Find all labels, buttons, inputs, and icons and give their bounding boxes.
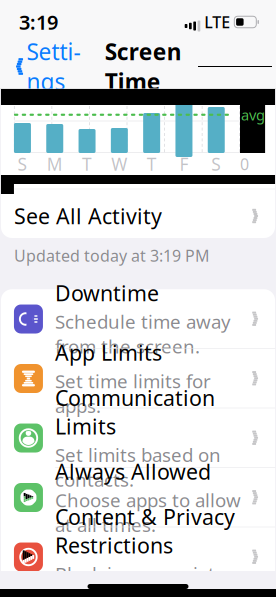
staticText: F [179, 152, 188, 175]
staticText: See All Activity [14, 202, 162, 230]
button[interactable]: Content & Privacy Restrictions [1, 527, 275, 587]
staticText: S [17, 152, 27, 175]
staticText: T [147, 152, 157, 175]
staticText: App Limits [55, 338, 162, 367]
staticText: Settings [26, 36, 80, 97]
staticText: Downtime [55, 279, 159, 307]
staticText: T [82, 152, 92, 175]
staticText: Content & Privacy Restrictions [55, 503, 235, 559]
staticText: Screen Time [105, 36, 182, 97]
staticText: Block inappropriate content. [55, 561, 226, 597]
staticText: W [111, 152, 127, 175]
button[interactable]: Downtime [1, 289, 275, 349]
button[interactable]: App Limits [1, 349, 275, 408]
staticText: Updated today at 3:19 PM [14, 245, 210, 266]
button[interactable]: See All Activity [1, 194, 275, 238]
staticText: S [211, 152, 221, 175]
staticText: M [47, 152, 63, 175]
staticText: Schedule time away from the screen. [55, 309, 231, 359]
staticText: Always Allowed [55, 457, 211, 486]
staticText: Communication Limits [55, 384, 215, 440]
staticText: Set time limits for apps. [55, 369, 211, 418]
button[interactable]: Communication Limits [1, 408, 275, 468]
staticText: avg [241, 105, 265, 124]
staticText: 0 [240, 153, 249, 175]
button[interactable]: Always Allowed [1, 468, 275, 527]
staticText: 3:19 [19, 9, 58, 35]
staticText: Choose apps to allow at all times. [55, 488, 241, 537]
staticText: Set limits based on contacts. [55, 442, 221, 492]
staticText: LTE [204, 11, 230, 33]
button[interactable]: Settings [4, 45, 88, 87]
